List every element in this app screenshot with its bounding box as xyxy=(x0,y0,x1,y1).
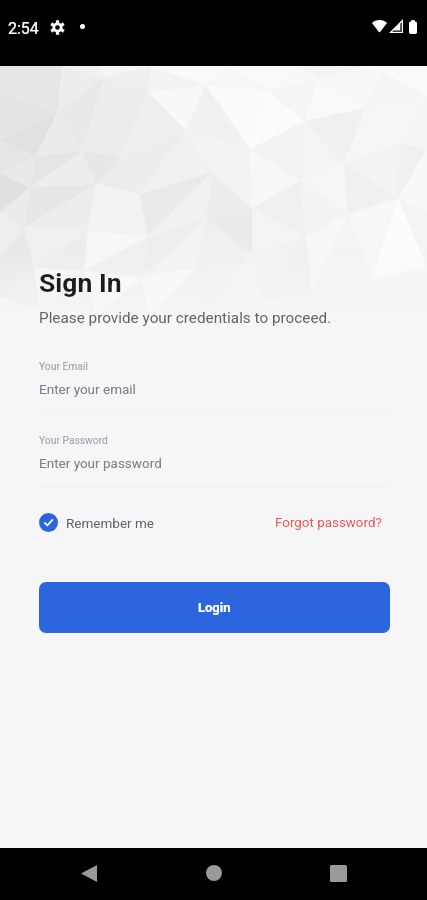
staticText: Remember me xyxy=(66,515,154,531)
staticText: Your Email xyxy=(39,360,88,372)
staticText: 2:54 xyxy=(8,19,39,38)
staticText: Sign In xyxy=(39,267,122,298)
staticText: Forgot password? xyxy=(275,515,382,531)
button[interactable]: Your Password xyxy=(39,434,390,487)
staticText: Please provide your credentials to proce… xyxy=(39,309,332,327)
staticText: Enter your password xyxy=(39,455,162,471)
staticText: Enter your email xyxy=(39,381,136,397)
button[interactable]: Home xyxy=(190,849,238,897)
button[interactable]: Your Email xyxy=(39,360,390,413)
button[interactable]: Recent apps xyxy=(314,849,362,897)
staticText: Login xyxy=(198,600,231,615)
staticText: Your Password xyxy=(39,434,108,446)
button[interactable]: Login xyxy=(39,582,390,633)
button[interactable]: Back xyxy=(65,849,113,897)
button[interactable]: Forgot password? xyxy=(275,515,390,531)
button[interactable]: Remember me xyxy=(39,513,154,532)
